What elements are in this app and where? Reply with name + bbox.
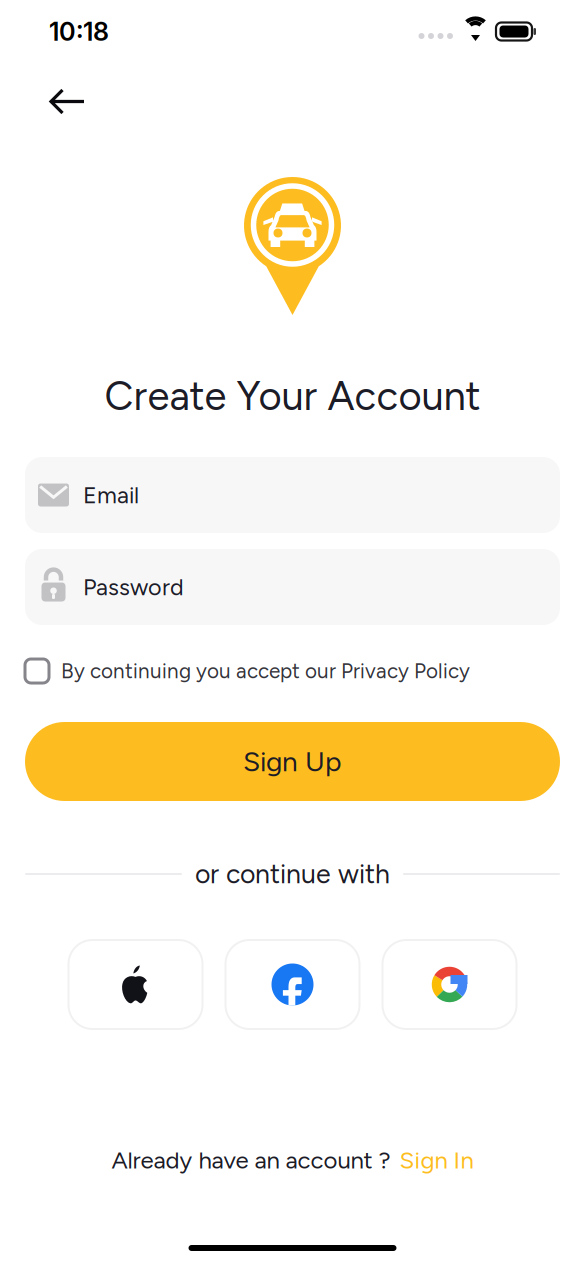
button[interactable]: Back [39, 78, 96, 125]
button[interactable]: Sign up with Google [382, 940, 516, 1029]
staticText: Sign Up [243, 745, 342, 778]
button[interactable]: Sign Up [25, 722, 560, 801]
staticText: Email [83, 481, 139, 509]
staticText: Password [83, 573, 184, 601]
staticText: By continuing you accept our Privacy Pol… [61, 659, 470, 683]
staticText: Create Your Account [104, 372, 480, 420]
button[interactable]: Sign up with Facebook [225, 940, 359, 1029]
button[interactable]: Sign In [390, 1146, 473, 1174]
staticText: or continue with [195, 858, 390, 890]
staticText: 10:18 [49, 16, 109, 47]
staticText: Sign In [399, 1146, 473, 1174]
staticText: Already have an account ? [111, 1146, 390, 1174]
button[interactable]: Sign up with Apple [68, 940, 202, 1029]
button[interactable]: By continuing you accept our Privacy Pol… [25, 659, 560, 683]
